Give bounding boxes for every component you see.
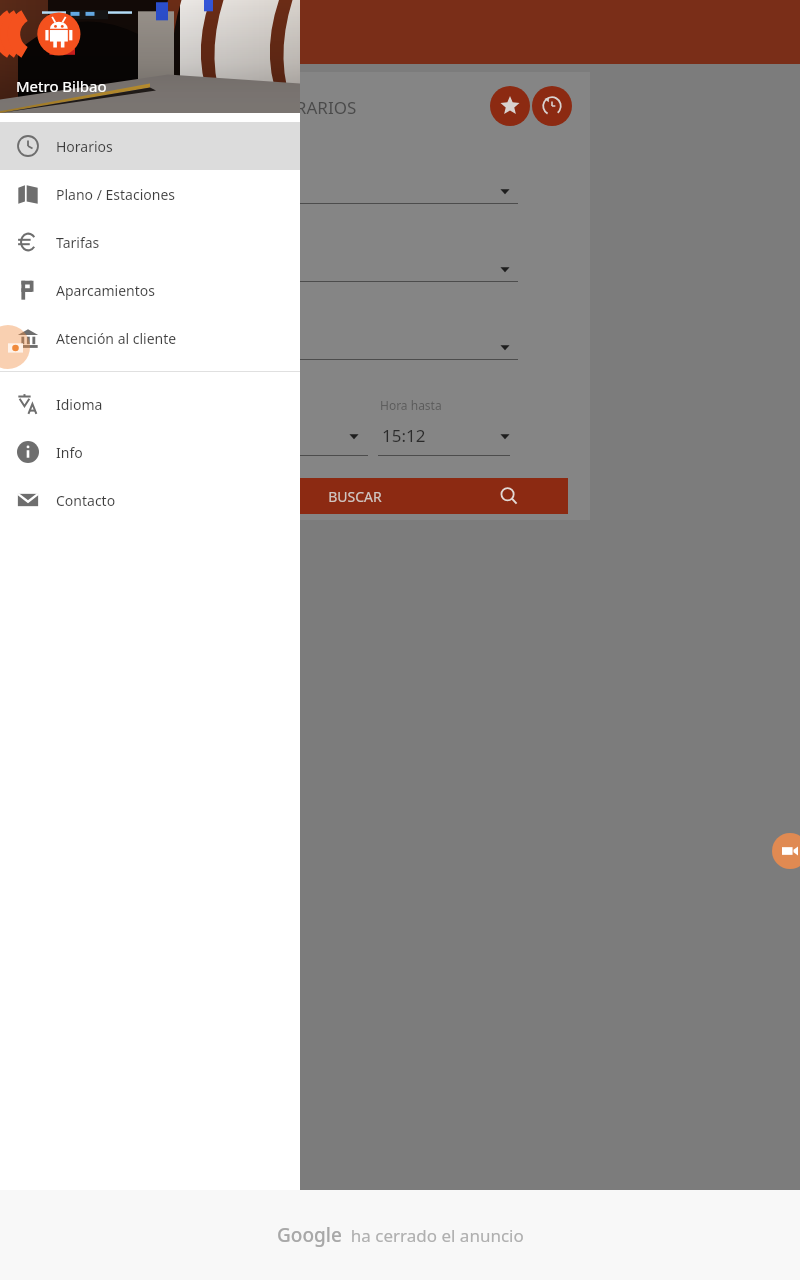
staticText: Hora hasta <box>380 397 442 413</box>
button[interactable]: Aparcamientos <box>0 266 300 314</box>
button[interactable]: Atención al cliente <box>0 314 300 362</box>
button[interactable]: Info <box>0 428 300 476</box>
staticText: ha cerrado el anuncio <box>342 1224 524 1247</box>
staticText: 15:12 <box>382 424 426 447</box>
staticText: BUSCAR <box>210 487 500 506</box>
staticText: Atención al cliente <box>56 329 177 348</box>
staticText: Info <box>56 443 83 462</box>
button[interactable]: Favoritos <box>490 86 530 126</box>
button[interactable]: Video <box>772 833 800 869</box>
button[interactable]: Horarios <box>0 122 300 170</box>
button[interactable]: BUSCAR <box>210 478 568 514</box>
button[interactable]: Contacto <box>0 476 300 524</box>
staticText: Aparcamientos <box>56 281 155 300</box>
button[interactable]: Idioma <box>0 380 300 428</box>
staticText: Google <box>277 1222 342 1248</box>
staticText: Idioma <box>56 395 103 414</box>
button[interactable]: Plano / Estaciones <box>0 170 300 218</box>
button[interactable]: Tarifas <box>0 218 300 266</box>
staticText: Contacto <box>56 491 116 510</box>
staticText: HORARIOS <box>270 96 357 119</box>
staticText: Horarios <box>56 137 113 156</box>
button[interactable]: Historial <box>532 86 572 126</box>
staticText: Metro Bilbao <box>16 76 107 96</box>
staticText: Tarifas <box>56 233 100 252</box>
staticText: Plano / Estaciones <box>56 185 175 204</box>
